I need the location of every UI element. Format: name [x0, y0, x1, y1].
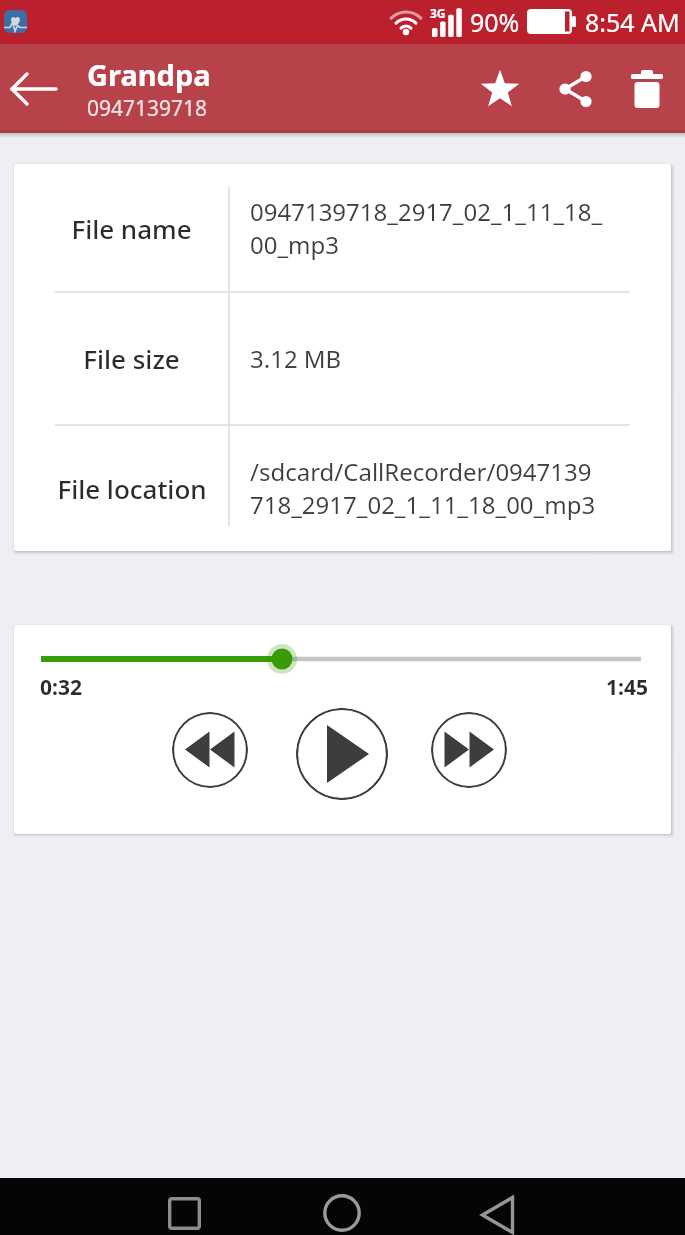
staticText: 1:45: [606, 673, 648, 702]
staticText: 0:32: [40, 673, 82, 702]
staticText: 3G: [430, 5, 446, 21]
button[interactable]: File size: [14, 292, 671, 425]
staticText: 0947139718: [87, 94, 208, 123]
button[interactable]: [472, 61, 528, 117]
button[interactable]: [153, 1187, 216, 1235]
button[interactable]: [466, 1188, 529, 1235]
button[interactable]: [5, 59, 65, 119]
button[interactable]: [172, 712, 248, 788]
staticText: File location: [57, 471, 207, 506]
button[interactable]: File name: [14, 164, 671, 292]
staticText: Grandpa: [87, 55, 211, 94]
button[interactable]: [310, 1186, 373, 1235]
staticText: /sdcard/CallRecorder/0947139 718_2917_02…: [250, 455, 596, 521]
button[interactable]: File location: [14, 425, 671, 551]
button[interactable]: [296, 708, 388, 800]
staticText: 3.12 MB: [250, 342, 342, 375]
staticText: 0947139718_2917_02_1_11_18_ 00_mp3: [250, 195, 603, 261]
button[interactable]: [431, 712, 507, 788]
staticText: File name: [71, 211, 192, 246]
staticText: File size: [83, 341, 180, 376]
staticText: 8:54 AM: [585, 5, 680, 39]
staticText: 90%: [470, 5, 520, 39]
button[interactable]: [548, 61, 604, 117]
button[interactable]: [619, 61, 675, 117]
